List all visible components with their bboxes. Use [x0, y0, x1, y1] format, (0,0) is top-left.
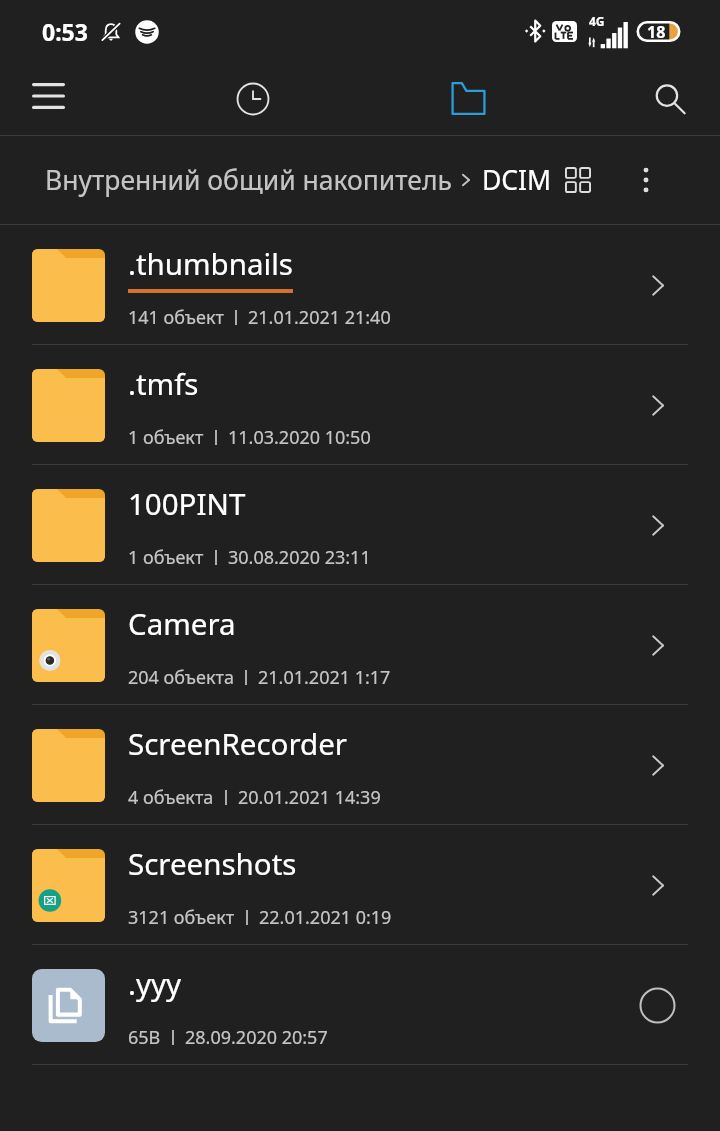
staticText: 28.09.2020 20:57 — [185, 1025, 328, 1050]
button[interactable]: ScreenRecorder — [0, 705, 720, 824]
button[interactable]: .thumbnails — [0, 225, 720, 344]
staticText: 1 объект — [128, 545, 204, 570]
button[interactable]: Search — [540, 62, 720, 135]
button[interactable]: More options — [622, 156, 670, 204]
staticText: 22.01.2021 0:19 — [259, 905, 392, 930]
staticText: DCIM — [482, 162, 552, 198]
staticText: Внутренний общий накопитель — [45, 162, 452, 198]
staticText: 18 — [647, 21, 666, 42]
staticText: 21.01.2021 21:40 — [248, 305, 391, 330]
staticText: 30.08.2020 23:11 — [228, 545, 371, 570]
staticText: .yyy — [128, 963, 182, 1003]
staticText: 141 объект — [128, 305, 224, 330]
staticText: 204 объекта — [128, 665, 234, 690]
button[interactable]: Menu — [0, 62, 180, 135]
staticText: 21.01.2021 1:17 — [258, 665, 391, 690]
button[interactable]: Grid view — [556, 158, 600, 202]
button[interactable]: Screenshots — [0, 825, 720, 944]
staticText: 1 объект — [128, 425, 204, 450]
staticText: ScreenRecorder — [128, 723, 348, 763]
staticText: 20.01.2021 14:39 — [238, 785, 381, 810]
staticText: Screenshots — [128, 843, 297, 883]
button[interactable]: Camera — [0, 585, 720, 704]
staticText: .thumbnails — [128, 243, 293, 283]
staticText: 0:53 — [42, 16, 88, 47]
button[interactable]: .yyy — [0, 945, 720, 1064]
staticText: 4G — [589, 13, 605, 29]
staticText: 100PINT — [128, 483, 246, 523]
button[interactable]: 100PINT — [0, 465, 720, 584]
staticText: 4 объекта — [128, 785, 214, 810]
staticText: 65В — [128, 1025, 161, 1050]
staticText: 11.03.2020 10:50 — [228, 425, 371, 450]
button[interactable]: Recent files — [180, 62, 360, 135]
button[interactable]: Folders — [360, 62, 540, 135]
staticText: 3121 объект — [128, 905, 235, 930]
staticText: Camera — [128, 603, 236, 643]
button[interactable]: .tmfs — [0, 345, 720, 464]
staticText: .tmfs — [128, 363, 199, 403]
